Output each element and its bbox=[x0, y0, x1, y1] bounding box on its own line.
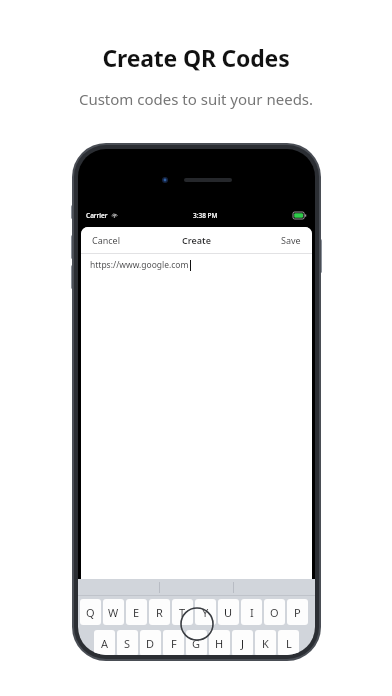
button[interactable]: Y bbox=[195, 599, 216, 625]
staticText: W bbox=[108, 605, 119, 620]
button[interactable]: Q bbox=[80, 599, 101, 625]
button[interactable]: K bbox=[255, 630, 276, 655]
button[interactable]: Save bbox=[279, 231, 303, 249]
staticText: T bbox=[179, 605, 186, 620]
button[interactable]: L bbox=[278, 630, 299, 655]
staticText: S bbox=[124, 636, 131, 651]
button[interactable]: https://www.google.com bbox=[81, 254, 312, 276]
staticText: R bbox=[156, 605, 163, 620]
staticText: Q bbox=[86, 605, 95, 620]
staticText: G bbox=[192, 636, 201, 651]
button[interactable]: O bbox=[264, 599, 285, 625]
staticText: A bbox=[101, 636, 109, 651]
button[interactable]: T bbox=[172, 599, 193, 625]
staticText: L bbox=[286, 636, 292, 651]
button[interactable]: I bbox=[241, 599, 262, 625]
staticText: Cancel bbox=[92, 234, 121, 246]
staticText: I bbox=[250, 605, 254, 620]
button[interactable]: U bbox=[218, 599, 239, 625]
button[interactable]: S bbox=[117, 630, 138, 655]
staticText: F bbox=[171, 636, 177, 651]
button[interactable]: Home bbox=[180, 607, 214, 641]
staticText: U bbox=[224, 605, 233, 620]
staticText: https://www.google.com bbox=[90, 259, 189, 271]
button[interactable]: J bbox=[232, 630, 253, 655]
staticText: Create QR Codes bbox=[0, 42, 392, 73]
staticText: Save bbox=[281, 234, 301, 246]
staticText: E bbox=[133, 605, 140, 620]
staticText: Carrier bbox=[86, 211, 108, 220]
staticText: H bbox=[215, 636, 224, 651]
button[interactable]: P bbox=[287, 599, 308, 625]
staticText: J bbox=[241, 636, 245, 651]
button[interactable]: Cancel bbox=[90, 231, 123, 249]
button[interactable]: E bbox=[126, 599, 147, 625]
staticText: O bbox=[270, 605, 279, 620]
button[interactable]: W bbox=[103, 599, 124, 625]
button[interactable]: H bbox=[209, 630, 230, 655]
button[interactable]: R bbox=[149, 599, 170, 625]
button[interactable]: G bbox=[186, 630, 207, 655]
button[interactable]: D bbox=[140, 630, 161, 655]
staticText: 3:38 PM bbox=[193, 211, 218, 220]
staticText: Create bbox=[182, 234, 211, 246]
staticText: K bbox=[262, 636, 269, 651]
staticText: Custom codes to suit your needs. bbox=[0, 89, 392, 109]
button[interactable]: F bbox=[163, 630, 184, 655]
button[interactable]: A bbox=[94, 630, 115, 655]
staticText: P bbox=[294, 605, 301, 620]
staticText: Y bbox=[202, 605, 209, 620]
staticText: D bbox=[146, 636, 155, 651]
